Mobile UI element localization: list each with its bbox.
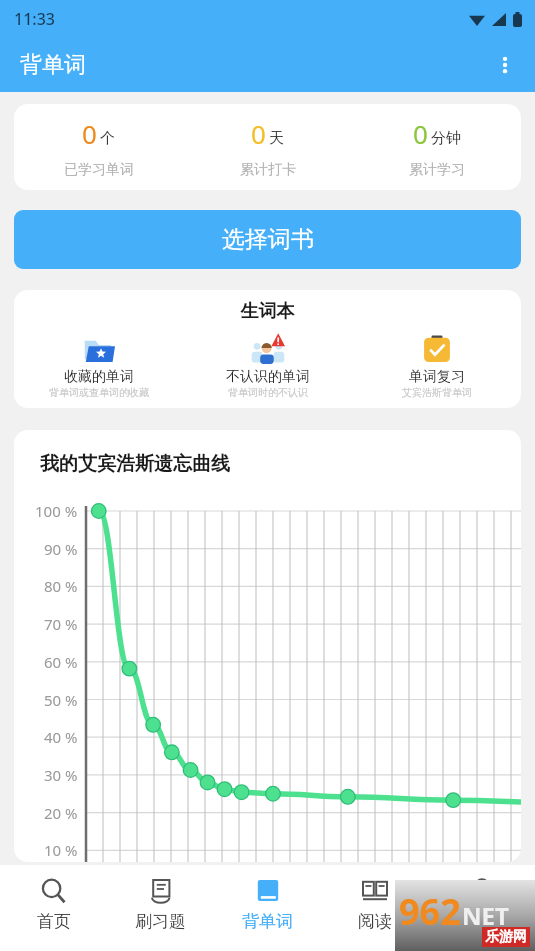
- staticText: 我的艾宾浩斯遗忘曲线: [40, 452, 230, 476]
- staticText: 40 %: [44, 727, 78, 747]
- button[interactable]: 首页: [0, 865, 107, 951]
- staticText: 累计学习: [409, 161, 465, 179]
- staticText: NET: [462, 899, 509, 932]
- staticText: 单词复习: [409, 368, 465, 386]
- staticText: 20 %: [44, 803, 78, 823]
- staticText: 80 %: [44, 576, 78, 596]
- staticText: 不认识的单词: [226, 368, 310, 386]
- staticText: 10 %: [44, 840, 78, 860]
- button[interactable]: More options: [483, 43, 527, 87]
- button[interactable]: 刷习题: [107, 865, 214, 951]
- staticText: 艾宾浩斯背单词: [402, 386, 472, 399]
- staticText: 11:33: [14, 8, 55, 30]
- button[interactable]: 不认识的单词: [183, 332, 352, 399]
- staticText: 阅读: [358, 911, 392, 932]
- staticText: 背单词: [242, 911, 293, 932]
- button[interactable]: 0: [352, 104, 521, 190]
- staticText: 首页: [37, 911, 71, 932]
- staticText: 30 %: [44, 765, 78, 785]
- staticText: 乐游网: [485, 928, 527, 946]
- staticText: 背单词时的不认识: [228, 386, 308, 399]
- staticText: 我的: [465, 911, 499, 932]
- staticText: 50 %: [44, 690, 78, 710]
- staticText: 生词本: [14, 300, 521, 323]
- staticText: 累计打卡: [240, 161, 296, 179]
- staticText: 0: [251, 116, 266, 151]
- staticText: 70 %: [44, 614, 78, 634]
- staticText: 100 %: [35, 501, 78, 521]
- staticText: 选择词书: [222, 225, 314, 254]
- button[interactable]: 单词复习: [352, 332, 521, 399]
- button[interactable]: 我的: [428, 865, 535, 951]
- button[interactable]: 收藏的单词: [14, 332, 183, 399]
- staticText: 60 %: [44, 652, 78, 672]
- staticText: 背单词或查单词的收藏: [49, 386, 149, 399]
- staticText: 962: [399, 887, 461, 936]
- staticText: 个: [100, 129, 115, 148]
- staticText: 刷习题: [135, 911, 186, 932]
- button[interactable]: 阅读: [321, 865, 428, 951]
- staticText: 天: [269, 129, 284, 148]
- staticText: 收藏的单词: [64, 368, 134, 386]
- button[interactable]: 选择词书: [14, 210, 521, 269]
- staticText: 已学习单词: [64, 161, 134, 179]
- staticText: 0: [82, 116, 97, 151]
- staticText: 背单词: [20, 51, 86, 79]
- staticText: 分钟: [431, 129, 461, 148]
- button[interactable]: 背单词: [214, 865, 321, 951]
- button[interactable]: 0: [183, 104, 352, 190]
- button[interactable]: 0: [14, 104, 183, 190]
- staticText: 90 %: [44, 539, 78, 559]
- staticText: 0: [413, 116, 428, 151]
